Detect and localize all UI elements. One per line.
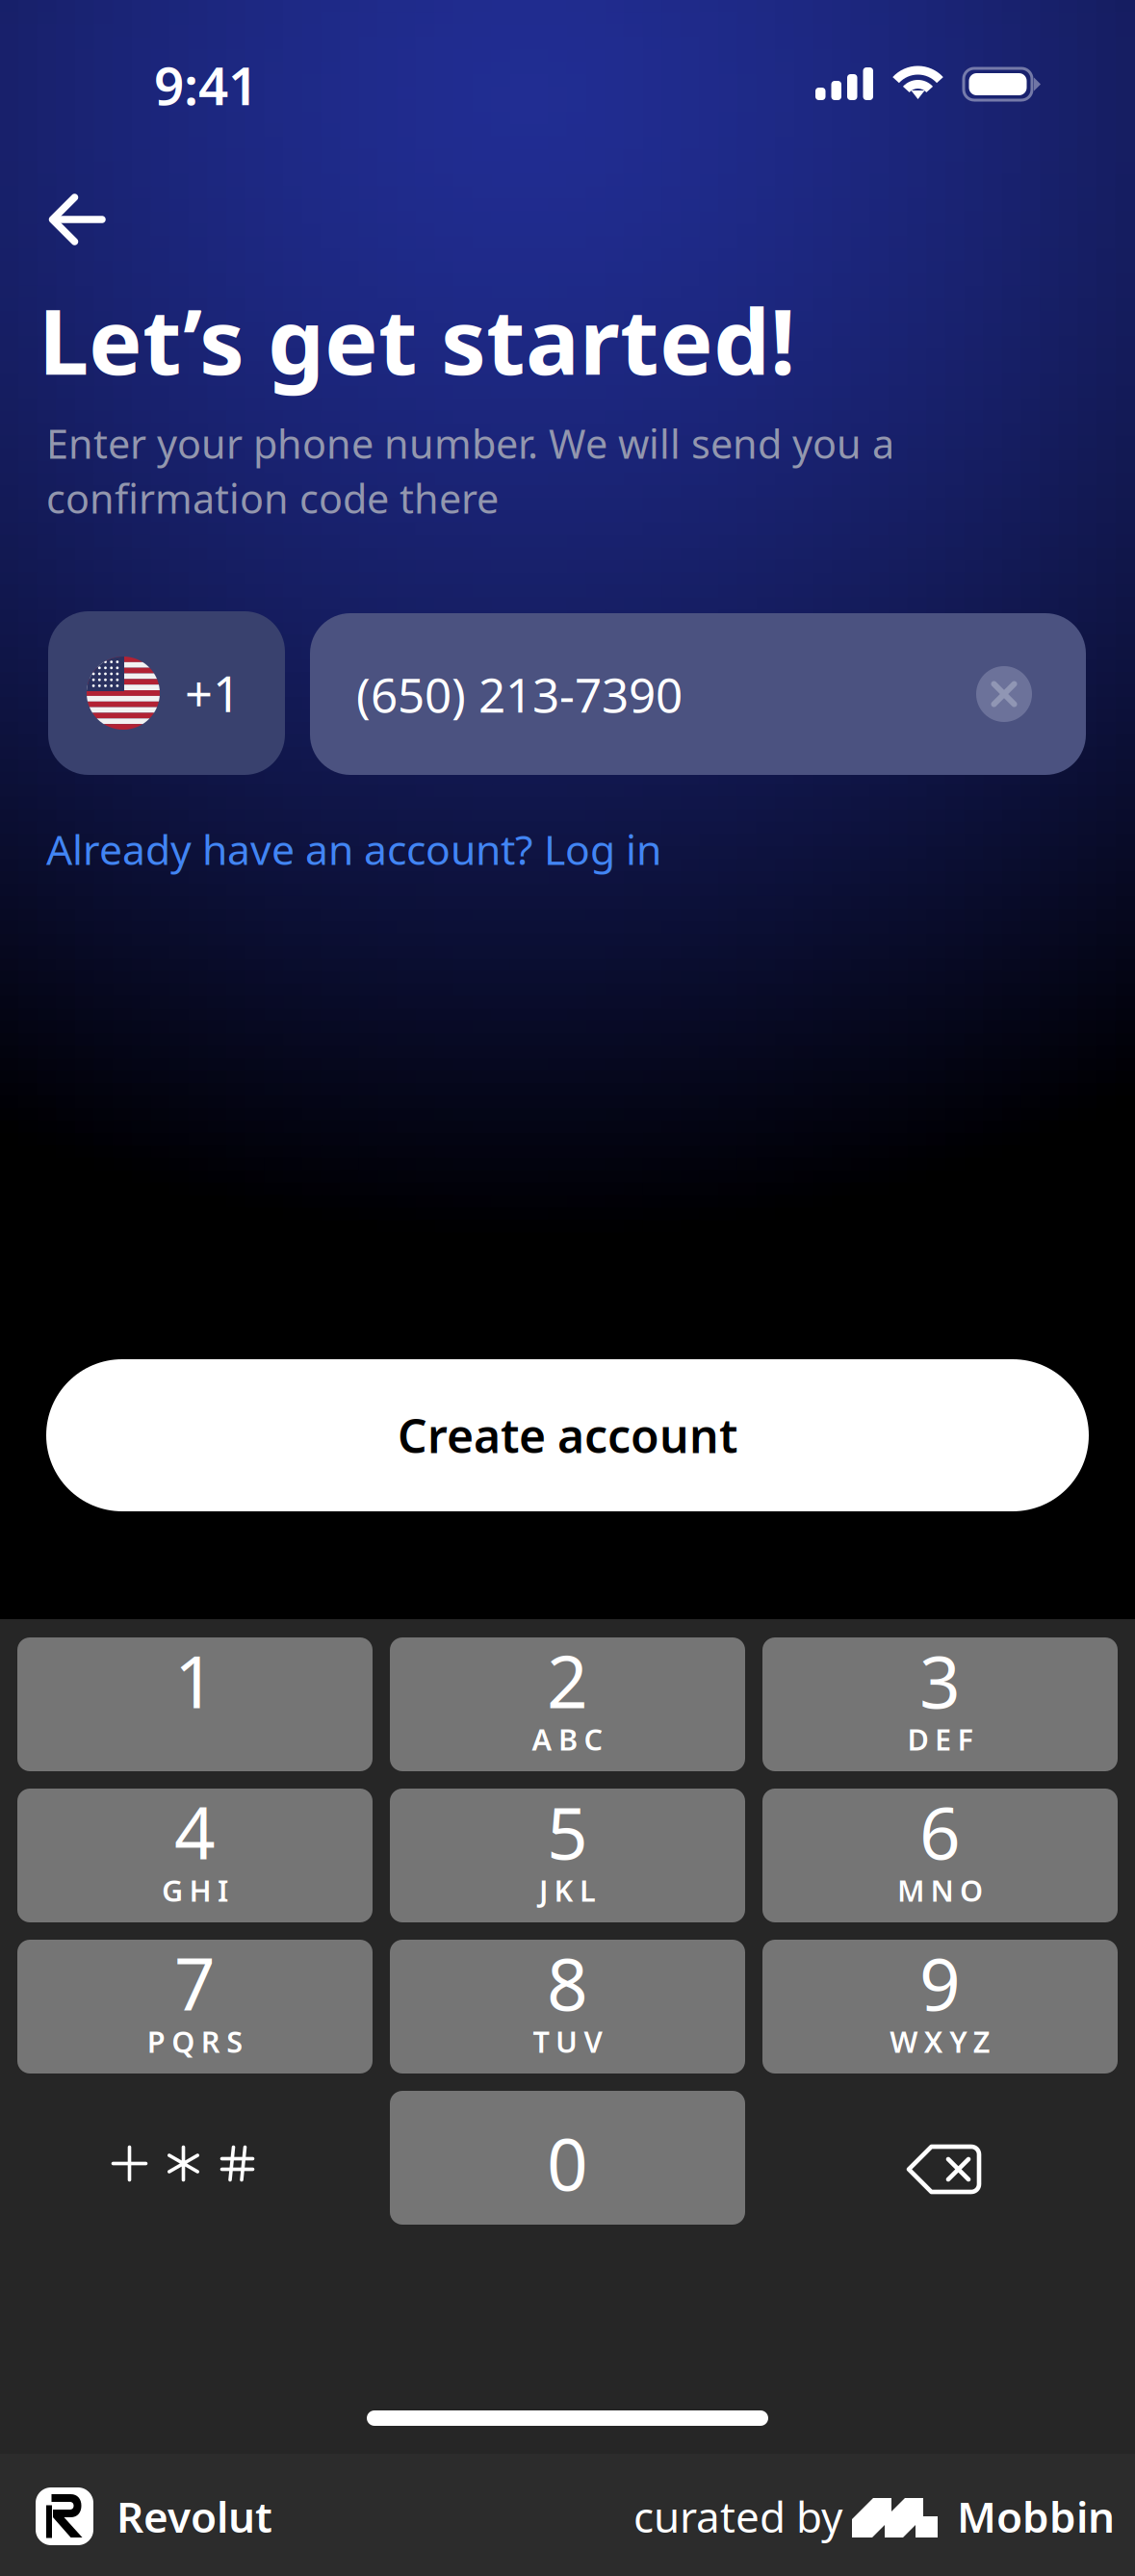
button[interactable]: Back (23, 166, 131, 273)
staticText: 6 (919, 1784, 961, 1879)
staticText: 0 (547, 2115, 588, 2210)
staticText: curated by (633, 2488, 842, 2544)
staticText: Revolut (116, 2488, 272, 2544)
staticText: Mobbin (957, 2488, 1115, 2544)
button[interactable]: 6 (762, 1789, 1118, 1922)
staticText: Let’s get started! (39, 280, 795, 399)
button[interactable]: 9 (762, 1940, 1118, 2074)
staticText: 9 (919, 1935, 961, 2030)
staticText: WXYZ (890, 2022, 990, 2061)
staticText: 3 (919, 1633, 961, 1728)
button[interactable]: 2 (390, 1637, 745, 1771)
button[interactable]: Delete (762, 2091, 1118, 2225)
staticText: 9:41 (154, 50, 258, 120)
button[interactable]: 3 (762, 1637, 1118, 1771)
staticText: 1 (174, 1633, 216, 1728)
button[interactable]: Already have an account? Log in (46, 814, 720, 884)
staticText: 2 (547, 1633, 588, 1728)
staticText: 5 (547, 1784, 588, 1879)
staticText: +1 (185, 661, 241, 726)
staticText: GHI (162, 1870, 228, 1910)
staticText: confirmation code there (46, 472, 499, 525)
staticText: 8 (547, 1935, 588, 2030)
button[interactable]: Country code, United States, plus 1 (48, 611, 285, 775)
staticText: Create account (398, 1405, 737, 1466)
button[interactable]: Create account (46, 1359, 1089, 1511)
button[interactable]: 5 (390, 1789, 745, 1922)
button[interactable]: Plus, asterisk, hash (17, 2091, 373, 2225)
staticText: Enter your phone number. We will send yo… (46, 417, 894, 470)
staticText: (650) 213-7390 (356, 662, 683, 726)
button[interactable]: 8 (390, 1940, 745, 2074)
staticText: Already have an account? Log in (46, 822, 661, 876)
staticText: 4 (174, 1784, 216, 1879)
button[interactable]: 1 (17, 1637, 373, 1771)
staticText: TUV (533, 2022, 602, 2061)
staticText: JKL (539, 1870, 596, 1910)
button[interactable]: 4 (17, 1789, 373, 1922)
staticText: DEF (907, 1719, 973, 1759)
staticText: MNO (897, 1870, 983, 1910)
button[interactable]: 0 (390, 2091, 745, 2225)
staticText: 7 (174, 1935, 216, 2030)
staticText: ABC (532, 1719, 603, 1759)
button[interactable]: 7 (17, 1940, 373, 2074)
button[interactable]: Clear text (958, 656, 1050, 733)
staticText: PQRS (147, 2022, 243, 2061)
